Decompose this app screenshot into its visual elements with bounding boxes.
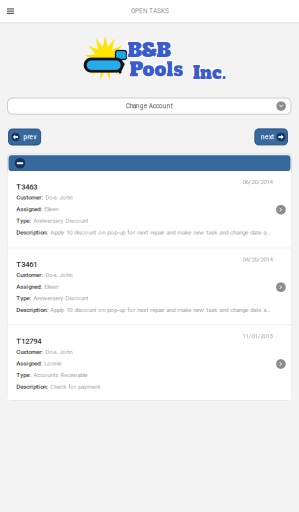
button[interactable]: prev [9,129,41,145]
staticText: Lonnie [44,360,61,367]
staticText: Assigned: [16,360,42,367]
staticText: B&B [127,38,170,63]
staticText: B&B [128,37,171,62]
staticText: 04/20/2014 [242,256,272,263]
staticText: Inc. [192,62,225,86]
staticText: Assigned: [16,283,42,290]
staticText: next [261,133,274,141]
staticText: B&B [127,39,170,64]
staticText: OPEN TASKS [131,7,169,15]
staticText: B&B [127,37,170,62]
staticText: Description: [16,383,48,390]
staticText: Type: [16,217,31,224]
staticText: prev [23,133,36,141]
staticText: Type: [16,371,31,379]
button[interactable]: Change Account [7,98,291,114]
staticText: Assigned: [16,205,42,213]
button[interactable]: T12794 [7,325,291,400]
button[interactable]: Collapse [15,158,25,168]
staticText: Customer: [16,348,43,355]
staticText: Doe, John [45,194,72,201]
staticText: Anniversery Discount [33,217,88,224]
staticText: Eileen [44,283,58,290]
staticText: Change Account [126,102,173,110]
staticText: 06/20/2014 [242,178,272,185]
staticText: Accounts Receivable [33,371,87,379]
staticText: Apply 10 discount on pop-up for next rep… [50,306,270,313]
staticText: Description: [16,229,48,236]
staticText: Inc. [193,61,226,85]
staticText: Type: [16,295,31,302]
button[interactable]: Menu [0,0,21,21]
staticText: Apply 10 discount on pop-up for next rep… [50,229,270,236]
staticText: T3463 [16,182,37,191]
staticText: Inc. [194,62,227,86]
staticText: Pools [130,56,184,82]
staticText: T3461 [16,260,37,269]
staticText: Customer: [16,271,43,279]
staticText: Inc. [194,60,227,84]
staticText: Doe, John [45,348,72,355]
staticText: Pools [128,58,182,83]
staticText: Inc. [192,60,225,84]
staticText: B&B [128,39,171,64]
staticText: Doe, John [45,271,72,279]
staticText: Anniversery Discount [33,295,88,302]
button[interactable]: T3463 [7,171,291,248]
staticText: Customer: [16,194,43,201]
staticText: Eileen [44,205,58,213]
button[interactable]: next [255,129,287,145]
button[interactable]: T3461 [7,248,291,324]
staticText: 11/01/2013 [242,332,272,340]
staticText: T12794 [16,337,41,346]
staticText: Check for payment [50,383,100,390]
staticText: Pools [128,56,182,82]
staticText: Description: [16,306,48,313]
staticText: Pools [130,58,184,83]
staticText: Pools [129,57,183,83]
